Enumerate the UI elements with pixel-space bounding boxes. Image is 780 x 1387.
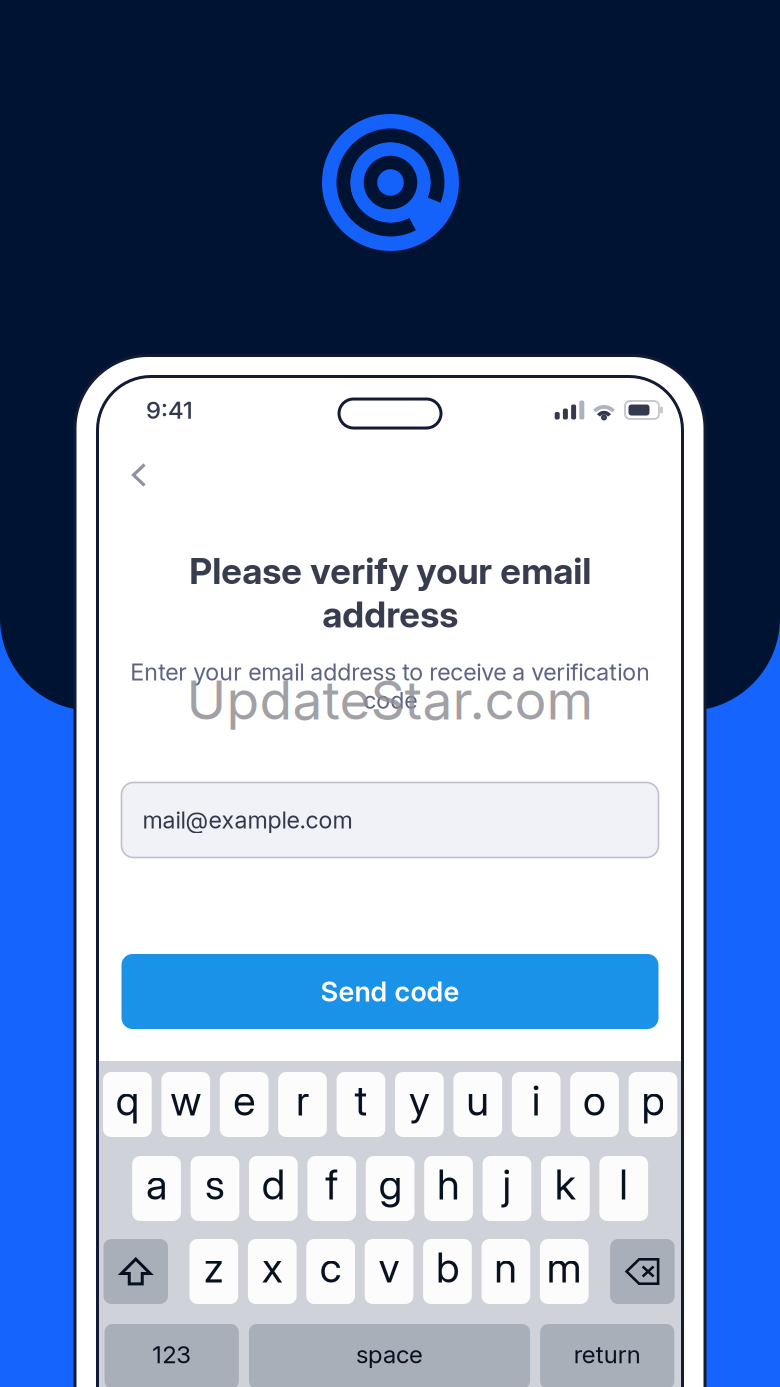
button[interactable]: Send code bbox=[121, 954, 658, 1029]
button[interactable]: Back bbox=[116, 452, 162, 498]
staticText: w bbox=[170, 1075, 201, 1125]
button[interactable]: return bbox=[540, 1324, 674, 1387]
staticText: mail@example.com bbox=[142, 806, 352, 834]
button[interactable]: m bbox=[540, 1239, 589, 1304]
staticText: s bbox=[205, 1159, 225, 1209]
staticText: 123 bbox=[152, 1340, 191, 1369]
button[interactable]: s bbox=[191, 1156, 239, 1221]
button[interactable]: v bbox=[365, 1239, 413, 1304]
staticText: Send code bbox=[320, 975, 459, 1008]
button[interactable]: space bbox=[249, 1324, 530, 1387]
button[interactable]: z bbox=[189, 1239, 238, 1304]
staticText: k bbox=[555, 1159, 576, 1209]
staticText: t bbox=[354, 1075, 367, 1125]
button[interactable]: g bbox=[366, 1156, 414, 1221]
button[interactable]: a bbox=[132, 1156, 181, 1221]
staticText: h bbox=[437, 1159, 460, 1209]
staticText: Please verify your email address bbox=[189, 549, 591, 636]
button[interactable]: Shift bbox=[103, 1239, 168, 1304]
staticText: UpdateStar.com bbox=[186, 668, 593, 732]
button[interactable]: n bbox=[481, 1239, 530, 1304]
button[interactable]: p bbox=[629, 1072, 677, 1137]
button[interactable]: w bbox=[161, 1072, 210, 1137]
staticText: d bbox=[262, 1159, 285, 1209]
staticText: r bbox=[296, 1075, 309, 1125]
button[interactable]: u bbox=[453, 1072, 502, 1137]
staticText: l bbox=[619, 1159, 628, 1209]
button[interactable]: Delete bbox=[610, 1239, 675, 1304]
staticText: n bbox=[494, 1242, 517, 1292]
staticText: c bbox=[320, 1242, 342, 1292]
button[interactable]: r bbox=[278, 1072, 327, 1137]
staticText: o bbox=[583, 1075, 606, 1125]
staticText: a bbox=[146, 1159, 167, 1209]
staticText: Enter your email address to receive a ve… bbox=[130, 658, 650, 714]
staticText: space bbox=[356, 1340, 423, 1369]
staticText: f bbox=[325, 1159, 338, 1209]
button[interactable]: d bbox=[249, 1156, 298, 1221]
staticText: e bbox=[233, 1075, 255, 1125]
staticText: 9:41 bbox=[146, 395, 193, 424]
staticText: g bbox=[379, 1159, 402, 1209]
button[interactable]: k bbox=[541, 1156, 590, 1221]
button[interactable]: i bbox=[512, 1072, 560, 1137]
button[interactable]: q bbox=[103, 1072, 152, 1137]
staticText: return bbox=[574, 1340, 641, 1369]
staticText: y bbox=[409, 1075, 430, 1125]
staticText: b bbox=[436, 1242, 459, 1292]
staticText: v bbox=[379, 1242, 400, 1292]
button[interactable]: c bbox=[306, 1239, 355, 1304]
staticText: z bbox=[204, 1242, 224, 1292]
staticText: m bbox=[547, 1242, 582, 1292]
button[interactable]: j bbox=[483, 1156, 531, 1221]
button[interactable]: mail@example.com bbox=[121, 782, 658, 857]
button[interactable]: l bbox=[599, 1156, 648, 1221]
staticText: j bbox=[502, 1159, 511, 1209]
button[interactable]: t bbox=[337, 1072, 385, 1137]
button[interactable]: o bbox=[570, 1072, 619, 1137]
button[interactable]: f bbox=[307, 1156, 356, 1221]
button[interactable]: 123 bbox=[104, 1324, 239, 1387]
button[interactable]: x bbox=[248, 1239, 297, 1304]
staticText: q bbox=[116, 1075, 139, 1125]
button[interactable]: b bbox=[423, 1239, 472, 1304]
button[interactable]: y bbox=[395, 1072, 444, 1137]
staticText: u bbox=[466, 1075, 489, 1125]
staticText: i bbox=[532, 1075, 541, 1125]
staticText: p bbox=[641, 1075, 664, 1125]
button[interactable]: h bbox=[424, 1156, 473, 1221]
button[interactable]: e bbox=[220, 1072, 268, 1137]
staticText: x bbox=[262, 1242, 283, 1292]
